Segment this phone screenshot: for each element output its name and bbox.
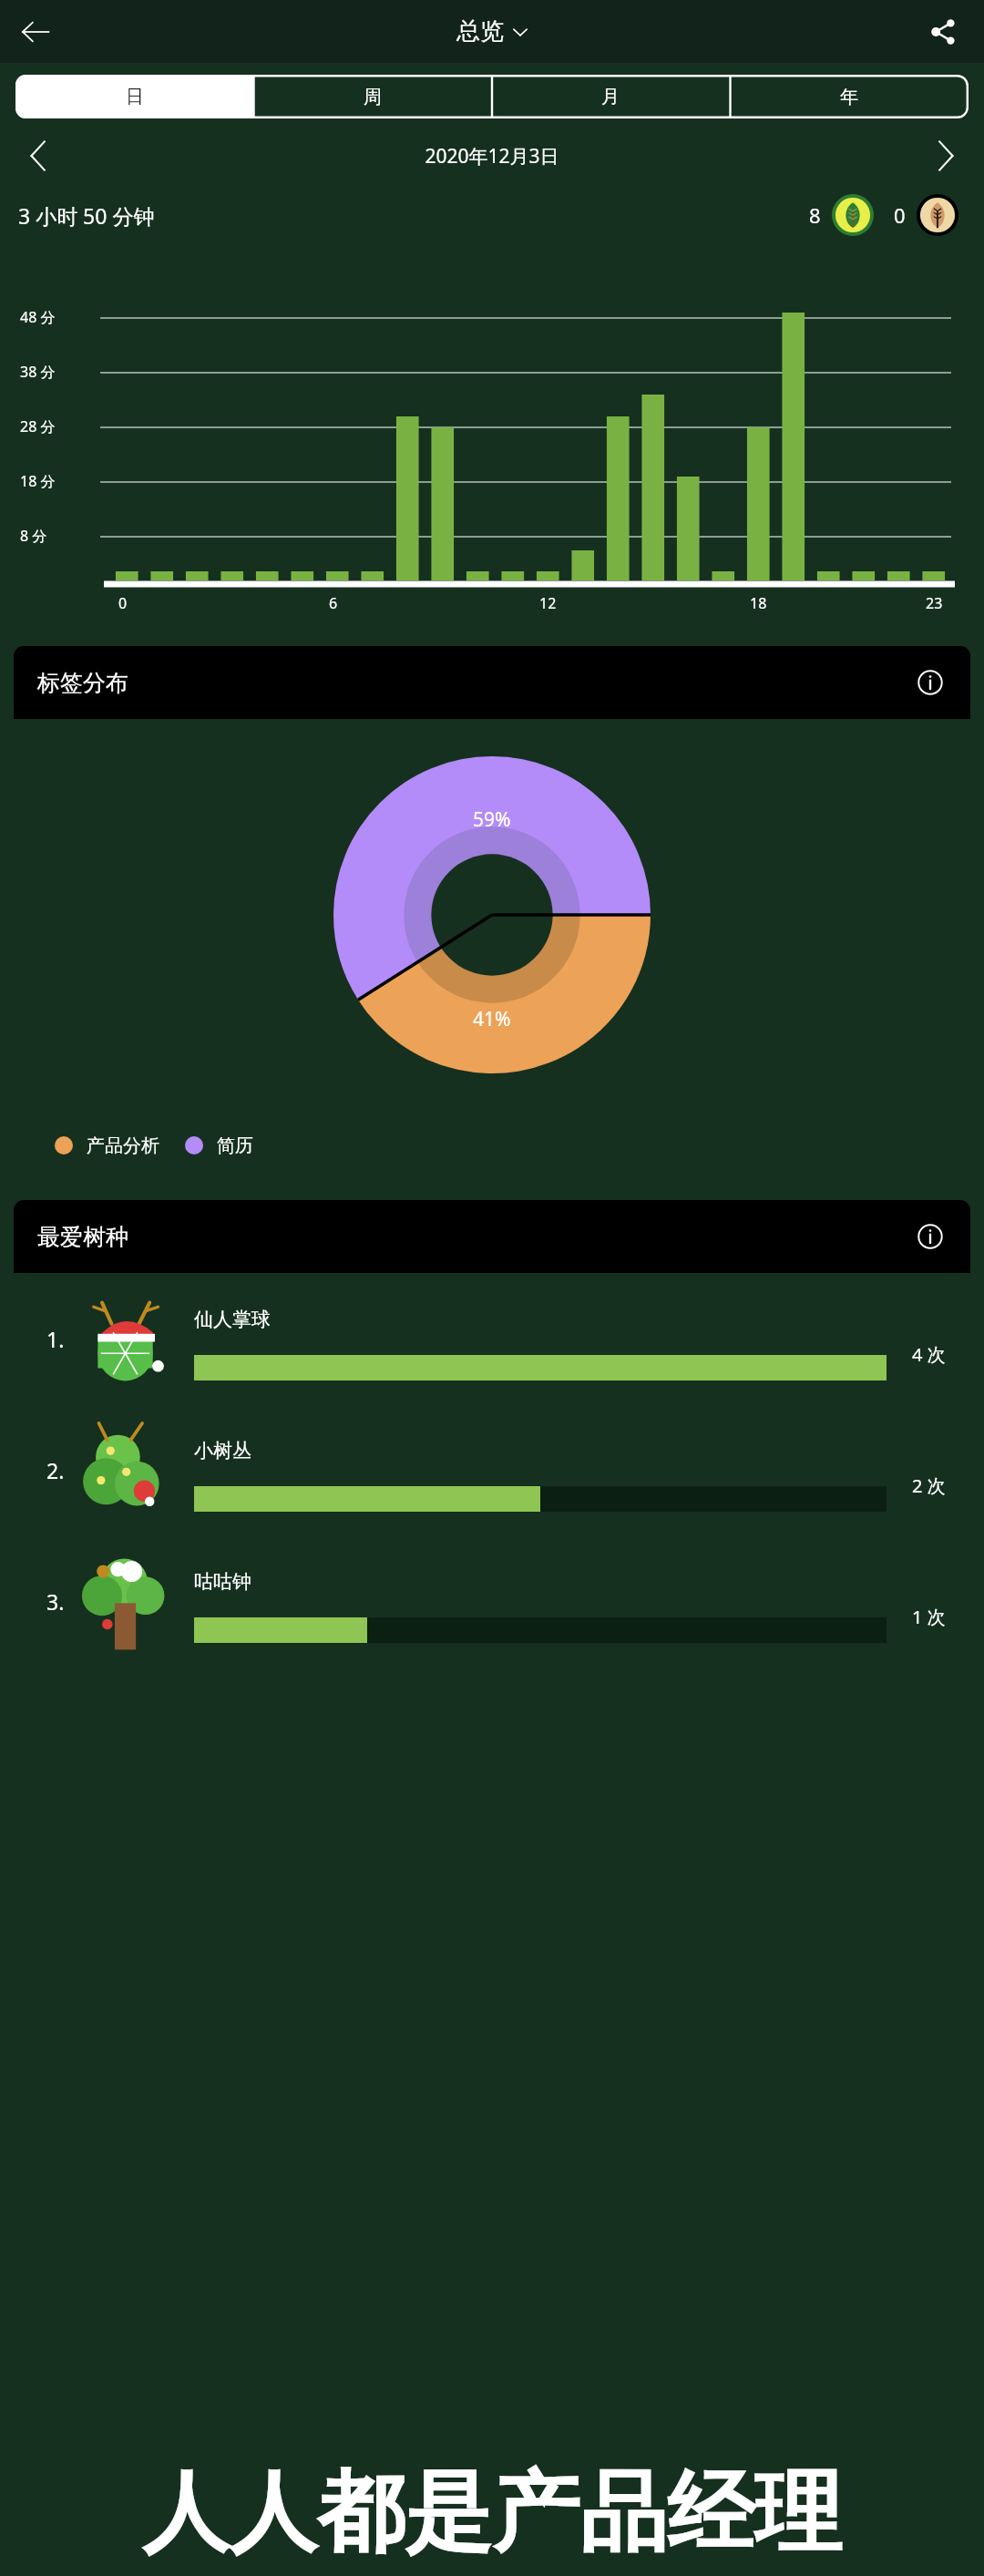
button[interactable]: Previous day	[11, 128, 66, 183]
button[interactable]: Back	[9, 5, 62, 58]
button[interactable]: 3.	[14, 1535, 970, 1667]
button[interactable]: 总览	[456, 16, 528, 46]
staticText: 最爱树种	[37, 1223, 128, 1251]
staticText: 咕咕钟	[194, 1570, 251, 1594]
staticText: 产品分析	[87, 1134, 159, 1157]
staticText: 2020年12月3日	[66, 143, 918, 169]
button[interactable]: Info	[908, 1215, 952, 1258]
button[interactable]: 2.	[14, 1404, 970, 1535]
staticText: 23	[926, 593, 943, 613]
staticText: 12	[539, 593, 557, 613]
staticText: 8 分	[20, 526, 47, 546]
staticText: 38 分	[20, 362, 56, 382]
button[interactable]: 周	[253, 75, 491, 118]
button[interactable]: Share	[917, 5, 969, 58]
staticText: 仙人掌球	[194, 1308, 271, 1331]
staticText: 6	[329, 593, 338, 613]
staticText: 2 次	[912, 1473, 946, 1498]
button[interactable]: 1.	[14, 1273, 970, 1404]
button[interactable]: 月	[491, 75, 730, 118]
staticText: 总览	[456, 16, 504, 46]
staticText: 人人都是产品经理	[0, 2458, 984, 2569]
staticText: 3 小时 50 分钟	[18, 201, 155, 230]
staticText: 41%	[473, 1006, 511, 1032]
button[interactable]: 日	[15, 75, 253, 118]
staticText: 周	[364, 86, 382, 108]
staticText: 48 分	[20, 307, 56, 327]
button[interactable]: Next day	[918, 128, 973, 183]
staticText: 1.	[46, 1325, 65, 1353]
staticText: 59%	[473, 806, 511, 833]
staticText: 简历	[217, 1134, 253, 1157]
staticText: 日	[126, 86, 144, 108]
staticText: 28 分	[20, 416, 56, 436]
staticText: 2.	[46, 1456, 65, 1484]
staticText: 18	[750, 593, 767, 613]
staticText: 0	[894, 201, 906, 229]
button[interactable]: 年	[730, 75, 969, 118]
staticText: 月	[601, 86, 620, 108]
staticText: 18 分	[20, 471, 56, 491]
staticText: 1 次	[912, 1605, 946, 1629]
staticText: 4 次	[912, 1342, 946, 1367]
staticText: 0	[118, 593, 128, 613]
button[interactable]: Info	[908, 661, 952, 704]
staticText: 年	[840, 86, 858, 108]
staticText: 3.	[46, 1587, 65, 1616]
staticText: 8	[809, 201, 821, 229]
staticText: 小树丛	[194, 1439, 251, 1462]
staticText: 标签分布	[37, 669, 128, 697]
